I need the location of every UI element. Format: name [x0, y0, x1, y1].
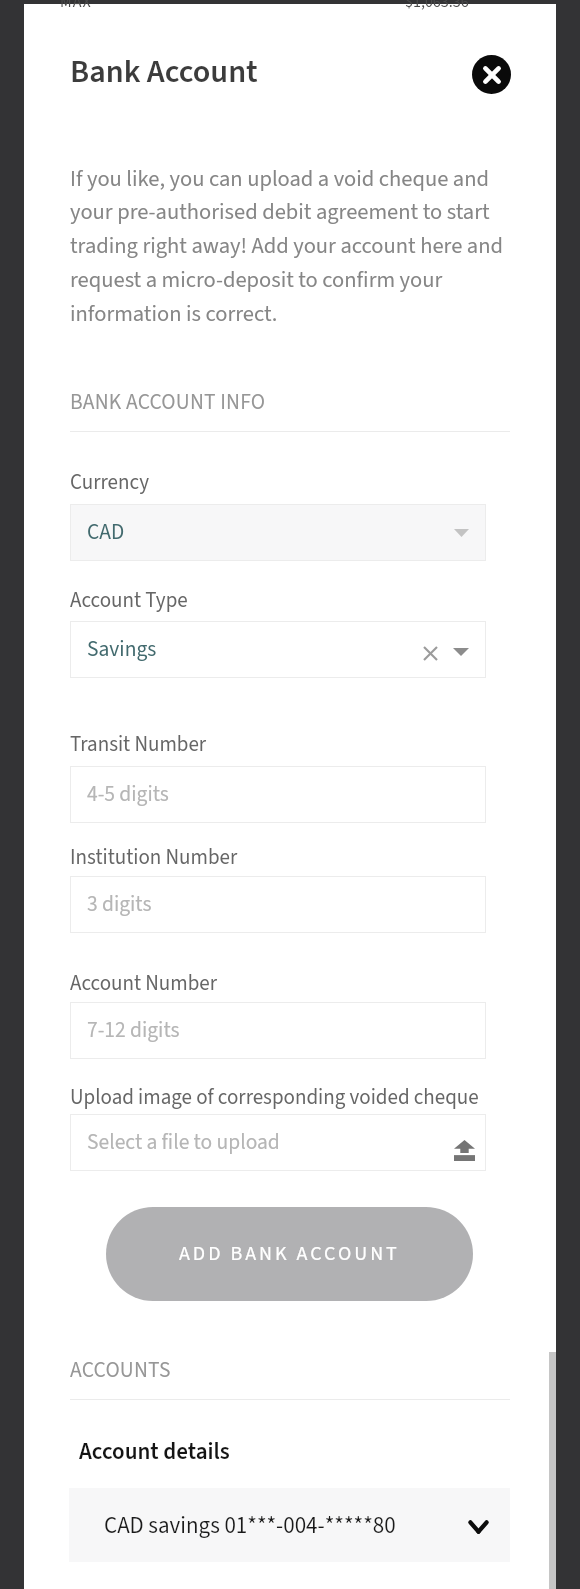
staticText: ADD BANK ACCOUNT — [179, 1240, 400, 1268]
staticText: 7-12 digits — [87, 1015, 180, 1046]
staticText: Bank Account — [70, 49, 258, 95]
staticText: $1,063.36 — [405, 0, 469, 14]
staticText: If you like, you can upload a void chequ… — [70, 163, 516, 330]
button[interactable]: Select a file to upload — [70, 1114, 486, 1171]
button[interactable]: 3 digits — [70, 876, 486, 933]
staticText: Currency — [70, 467, 149, 497]
staticText: 3 digits — [87, 889, 152, 920]
other: Clear — [424, 647, 437, 660]
staticText: 4-5 digits — [87, 779, 169, 810]
button[interactable]: CAD savings 01***-004-*****80 — [104, 1488, 489, 1562]
staticText: Account Number — [70, 968, 217, 998]
other: Upload file — [454, 1140, 475, 1161]
button[interactable]: 4-5 digits — [70, 766, 486, 823]
staticText: Savings — [87, 634, 157, 665]
other: Expand — [468, 1520, 489, 1534]
button[interactable]: CAD — [70, 504, 486, 561]
staticText: Upload image of corresponding voided che… — [70, 1082, 479, 1112]
button[interactable]: Savings — [70, 621, 486, 678]
staticText: CAD — [87, 517, 125, 548]
staticText: MAX — [60, 0, 92, 14]
button[interactable]: 7-12 digits — [70, 1002, 486, 1059]
button[interactable]: Close — [472, 55, 511, 94]
button[interactable]: ADD BANK ACCOUNT — [106, 1207, 473, 1301]
staticText: CAD savings 01***-004-*****80 — [104, 1509, 396, 1542]
staticText: Select a file to upload — [87, 1127, 280, 1158]
staticText: BANK ACCOUNT INFO — [70, 387, 266, 418]
staticText: ACCOUNTS — [70, 1355, 171, 1386]
staticText: Institution Number — [70, 842, 238, 872]
staticText: Transit Number — [70, 729, 207, 759]
staticText: Account Type — [70, 585, 188, 615]
staticText: Account details — [79, 1435, 230, 1468]
